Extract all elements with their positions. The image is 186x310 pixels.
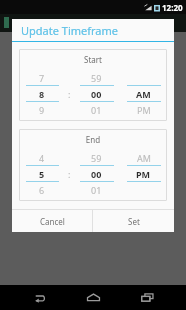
button[interactable]: 01 xyxy=(73,104,120,115)
staticText: Update Timeframe xyxy=(21,23,118,38)
button[interactable]: 59 xyxy=(73,152,120,163)
staticText: 7 xyxy=(39,72,45,83)
staticText: 8 xyxy=(39,88,45,99)
button[interactable]: AM xyxy=(120,152,167,163)
button[interactable] xyxy=(120,184,167,195)
button[interactable]: Cancel xyxy=(12,210,92,232)
button[interactable]: 6 xyxy=(19,184,65,195)
staticText: Cancel xyxy=(40,216,65,227)
button[interactable]: 00 xyxy=(73,88,120,99)
staticText: 6 xyxy=(39,184,45,195)
staticText: 00 xyxy=(91,88,102,99)
staticText: Start xyxy=(19,54,167,65)
button[interactable]: 59 xyxy=(73,72,120,83)
button[interactable]: 01 xyxy=(73,184,120,195)
staticText: 5 xyxy=(39,168,45,179)
staticText: : xyxy=(68,88,71,99)
staticText: PM xyxy=(137,104,151,115)
button[interactable]: Home xyxy=(78,285,108,310)
button[interactable]: 00 xyxy=(73,168,120,179)
button[interactable]: AM xyxy=(120,88,167,99)
button[interactable]: Recent apps xyxy=(132,285,162,310)
staticText: PM xyxy=(136,168,151,179)
staticText: 59 xyxy=(91,152,102,163)
button[interactable] xyxy=(120,72,167,83)
staticText: AM xyxy=(137,152,151,163)
button[interactable]: 5 xyxy=(19,168,65,179)
button[interactable]: 4 xyxy=(19,152,65,163)
button[interactable]: 7 xyxy=(19,72,65,83)
staticText: End xyxy=(19,134,167,145)
staticText: 4 xyxy=(39,152,45,163)
staticText: 59 xyxy=(91,72,102,83)
staticText: 01 xyxy=(91,104,102,115)
button[interactable]: 8 xyxy=(19,88,65,99)
staticText: 01 xyxy=(91,184,102,195)
staticText: AM xyxy=(136,88,151,99)
staticText: 9 xyxy=(39,104,45,115)
staticText: 12:20 xyxy=(162,2,183,13)
staticText: Set xyxy=(128,216,140,227)
staticText: : xyxy=(68,168,71,179)
button[interactable]: PM xyxy=(120,104,167,115)
button[interactable]: PM xyxy=(120,168,167,179)
button[interactable]: 9 xyxy=(19,104,65,115)
staticText: 00 xyxy=(91,168,102,179)
button[interactable]: Set xyxy=(93,210,174,232)
button[interactable]: Back xyxy=(24,285,54,310)
